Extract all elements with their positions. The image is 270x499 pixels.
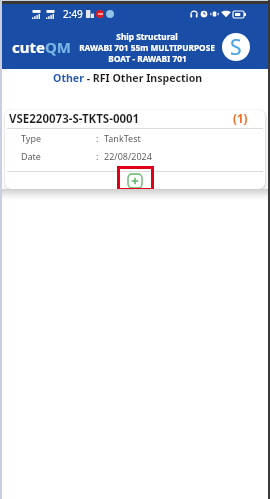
button[interactable]: VSE220073-S-TKTS-0001	[5, 110, 265, 189]
button[interactable]: Add	[117, 166, 154, 191]
staticText: (1)	[233, 111, 248, 127]
button[interactable]: Profile	[222, 33, 250, 61]
staticText: VSE220073-S-TKTS-0001	[9, 111, 140, 127]
staticText: cuteQM	[12, 37, 71, 57]
staticText: :	[96, 132, 99, 144]
staticText: S	[230, 33, 242, 61]
staticText: 2:49	[63, 7, 83, 21]
staticText: Ship Structural	[116, 31, 178, 42]
staticText: Other - RFI Other Inspection	[53, 71, 203, 85]
staticText: 22/08/2024	[104, 150, 152, 162]
staticText: BOAT - RAWABI 701	[108, 53, 187, 64]
staticText: Date	[21, 150, 41, 162]
staticText: Type	[21, 132, 42, 144]
staticText: :	[96, 150, 99, 162]
staticText: RAWABI 701 55m MULTIPURPOSE	[79, 42, 215, 53]
staticText: TankTest	[104, 132, 141, 144]
